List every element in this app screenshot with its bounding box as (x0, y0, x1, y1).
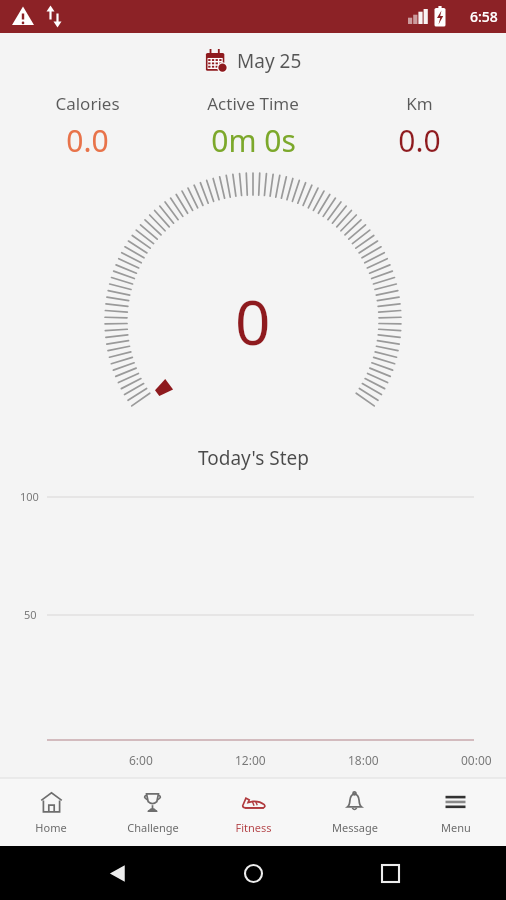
button[interactable]: Challenge (102, 778, 203, 846)
button[interactable]: Km (336, 88, 502, 165)
button[interactable]: Menu (405, 778, 506, 846)
staticText: Km (406, 92, 433, 115)
staticText: 00:00 (461, 752, 492, 768)
staticText: 50 (24, 607, 37, 622)
staticText: Home (35, 820, 67, 835)
staticText: Challenge (127, 820, 179, 835)
staticText: 0.0 (398, 120, 441, 161)
staticText: 100 (20, 489, 39, 504)
other: Pick date (205, 49, 228, 72)
button[interactable]: Message (304, 778, 405, 846)
staticText: Fitness (235, 820, 272, 835)
staticText: 12:00 (235, 752, 266, 768)
staticText: Message (332, 820, 378, 835)
staticText: 6:00 (129, 752, 153, 768)
button[interactable]: Fitness (203, 778, 304, 846)
button[interactable]: Home (233, 853, 273, 893)
button[interactable]: Home (0, 778, 102, 846)
staticText: 0.0 (66, 120, 109, 161)
button[interactable]: Pick date (0, 33, 506, 88)
staticText: 6:58 (470, 7, 498, 26)
staticText: Today's Step (198, 445, 309, 471)
staticText: Active Time (207, 92, 299, 115)
button[interactable]: Back (97, 853, 137, 893)
button[interactable]: Recent apps (370, 853, 410, 893)
staticText: Menu (441, 820, 471, 835)
staticText: 0m 0s (211, 120, 296, 161)
staticText: Calories (55, 92, 120, 115)
staticText: May 25 (237, 48, 302, 74)
button[interactable]: Calories (4, 88, 170, 165)
staticText: 18:00 (348, 752, 379, 768)
button[interactable]: Active Time (170, 88, 336, 165)
staticText: 0 (235, 279, 271, 363)
